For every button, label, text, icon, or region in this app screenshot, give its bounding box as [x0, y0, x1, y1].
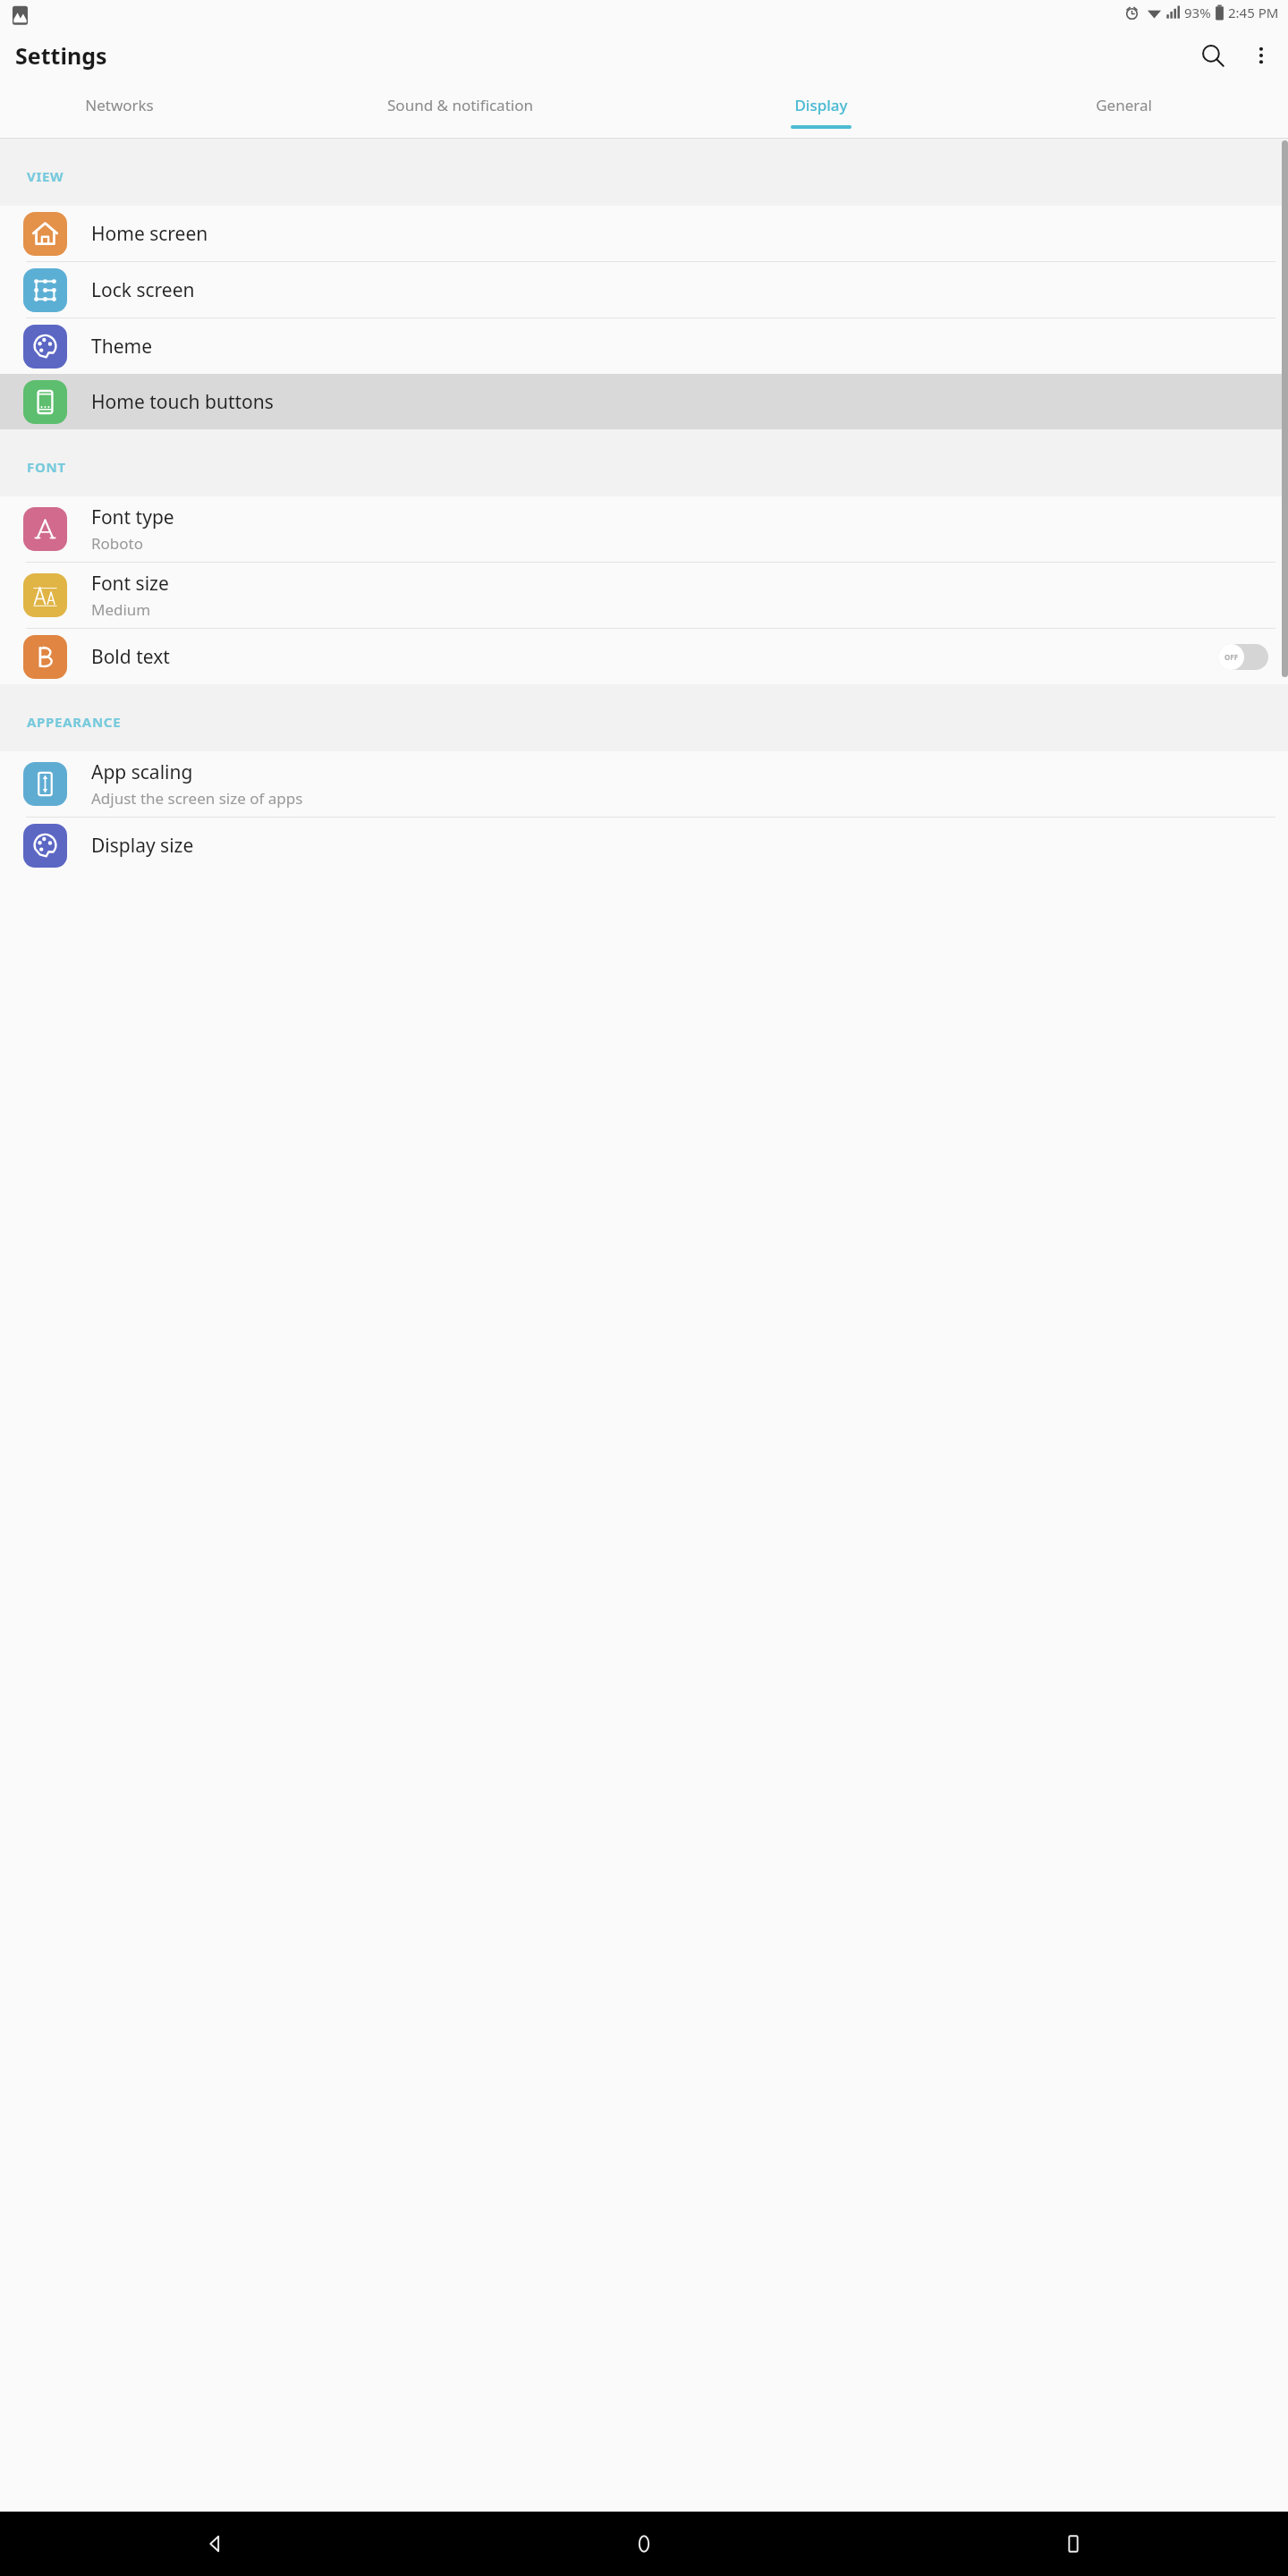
staticText: Home screen [91, 221, 208, 247]
staticText: Font type [91, 504, 174, 530]
staticText: Settings [15, 40, 107, 71]
button[interactable]: General [960, 86, 1288, 138]
staticText: Sound & notification [387, 95, 533, 115]
button[interactable]: Font type [0, 496, 1288, 563]
button[interactable]: Display size [0, 818, 1288, 873]
button[interactable]: Home screen [0, 206, 1288, 262]
button[interactable]: Display [682, 86, 960, 138]
staticText: Adjust the screen size of apps [91, 788, 303, 809]
button[interactable]: Search [1188, 30, 1238, 80]
staticText: APPEARANCE [27, 713, 122, 731]
button[interactable]: Home [429, 2512, 859, 2576]
staticText: Theme [91, 334, 152, 360]
staticText: Home touch buttons [91, 389, 274, 415]
staticText: Bold text [91, 644, 170, 670]
staticText: App scaling [91, 759, 193, 785]
staticText: 2:45 PM [1228, 4, 1279, 21]
button[interactable]: Bold text [0, 629, 1288, 684]
button[interactable]: Font size [0, 563, 1288, 629]
staticText: Lock screen [91, 277, 195, 303]
staticText: FONT [27, 458, 66, 476]
button[interactable]: Bold text off [1218, 644, 1268, 670]
button[interactable]: Networks [0, 86, 238, 138]
button[interactable]: More options [1238, 32, 1284, 79]
staticText: 93% [1184, 4, 1211, 21]
button[interactable]: App scaling [0, 751, 1288, 818]
staticText: Networks [85, 95, 154, 115]
staticText: Display size [91, 833, 194, 859]
button[interactable]: Recents [859, 2512, 1288, 2576]
staticText: VIEW [27, 167, 64, 185]
staticText: OFF [1224, 652, 1239, 662]
button[interactable]: Lock screen [0, 262, 1288, 318]
staticText: Medium [91, 599, 151, 620]
button[interactable]: Theme [0, 318, 1288, 374]
button[interactable]: Back [0, 2512, 429, 2576]
staticText: Font size [91, 571, 169, 597]
button[interactable]: Home touch buttons [0, 374, 1288, 429]
staticText: Display [794, 95, 848, 115]
button[interactable]: Sound & notification [238, 86, 682, 138]
staticText: Roboto [91, 533, 144, 554]
staticText: General [1096, 95, 1152, 115]
